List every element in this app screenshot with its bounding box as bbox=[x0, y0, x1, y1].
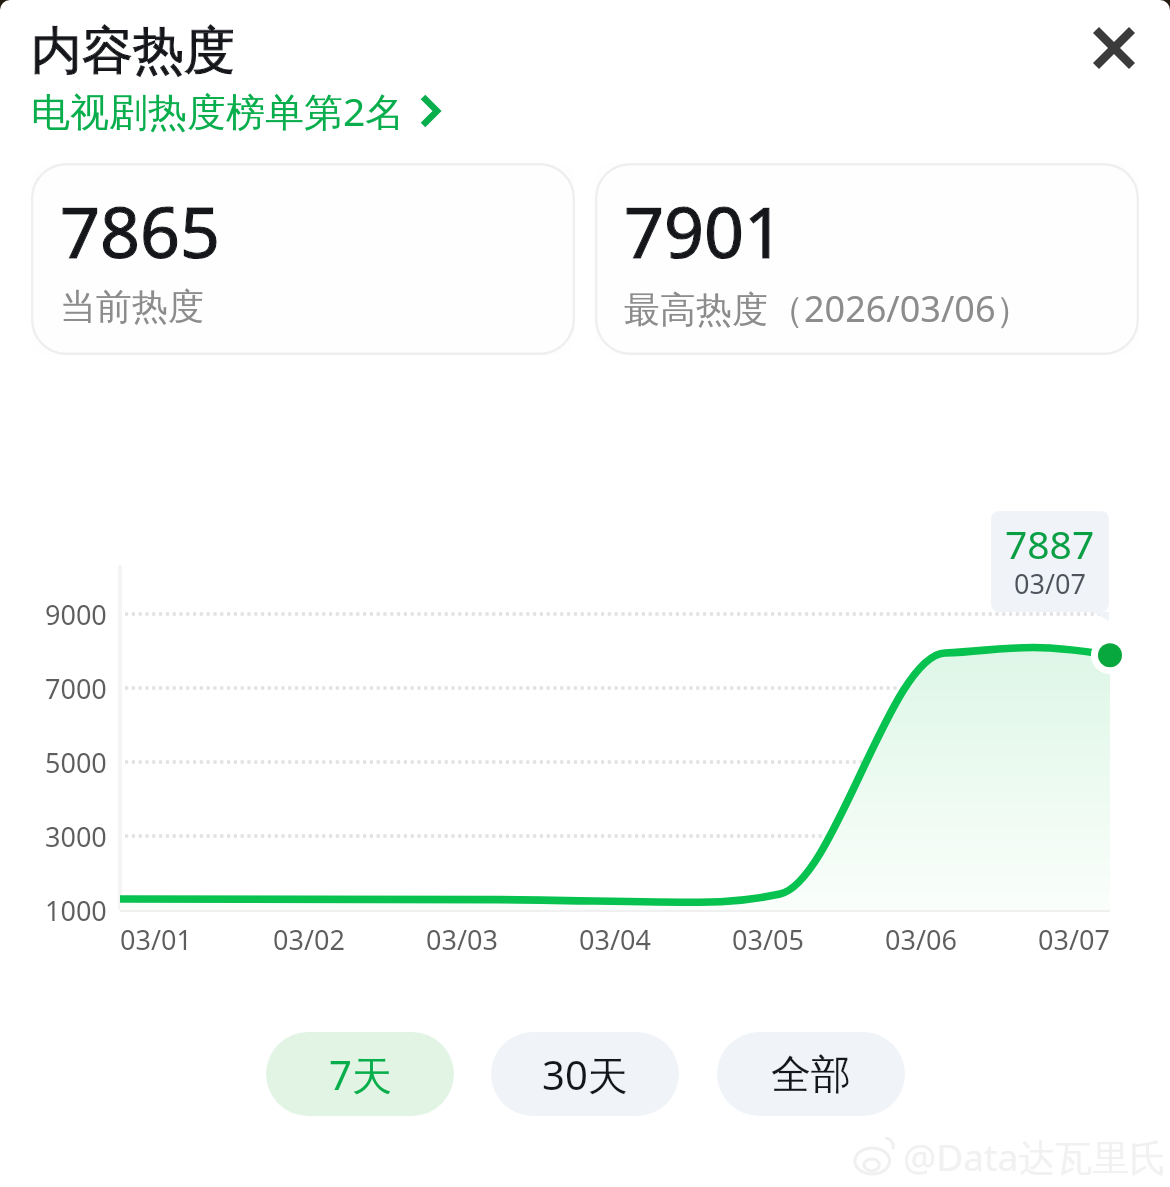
staticText: 03/06 bbox=[885, 921, 957, 958]
button[interactable]: 全部 bbox=[717, 1032, 905, 1116]
staticText: 7天 bbox=[329, 1047, 392, 1102]
staticText: 03/04 bbox=[579, 921, 651, 958]
button[interactable]: 电视剧热度榜单第2名 bbox=[31, 84, 439, 137]
button[interactable]: 7865 bbox=[31, 163, 575, 355]
staticText: 03/07 bbox=[1038, 921, 1110, 958]
staticText: 1000 bbox=[45, 892, 107, 929]
staticText: 7865 bbox=[60, 183, 221, 278]
staticText: 7901 bbox=[624, 183, 785, 278]
staticText: 03/05 bbox=[732, 921, 804, 958]
staticText: 5000 bbox=[45, 744, 107, 781]
staticText: 9000 bbox=[45, 596, 107, 633]
staticText: 7865 bbox=[60, 183, 221, 278]
staticText: 内容热度 bbox=[31, 19, 235, 83]
staticText: 03/03 bbox=[426, 921, 498, 958]
staticText: 30天 bbox=[542, 1047, 628, 1102]
staticText: @Data达瓦里氏 bbox=[903, 1131, 1167, 1182]
button[interactable]: Close bbox=[1079, 13, 1149, 83]
staticText: 电视剧热度榜单第2名 bbox=[31, 84, 405, 137]
staticText: 03/07 bbox=[1014, 565, 1086, 602]
staticText: 当前热度 bbox=[60, 284, 204, 329]
button[interactable]: 7901 bbox=[595, 163, 1139, 355]
button[interactable]: 7天 bbox=[266, 1032, 454, 1116]
staticText: 7000 bbox=[45, 670, 107, 707]
staticText: 7887 bbox=[1005, 517, 1095, 570]
staticText: 03/01 bbox=[120, 921, 192, 958]
staticText: 7901 bbox=[624, 183, 785, 278]
staticText: 内容热度 bbox=[31, 19, 235, 83]
staticText: 03/02 bbox=[273, 921, 345, 958]
staticText: 最高热度（2026/03/06） bbox=[624, 284, 1032, 333]
button[interactable]: 30天 bbox=[491, 1032, 679, 1116]
staticText: 3000 bbox=[45, 818, 107, 855]
staticText: 全部 bbox=[771, 1049, 851, 1099]
